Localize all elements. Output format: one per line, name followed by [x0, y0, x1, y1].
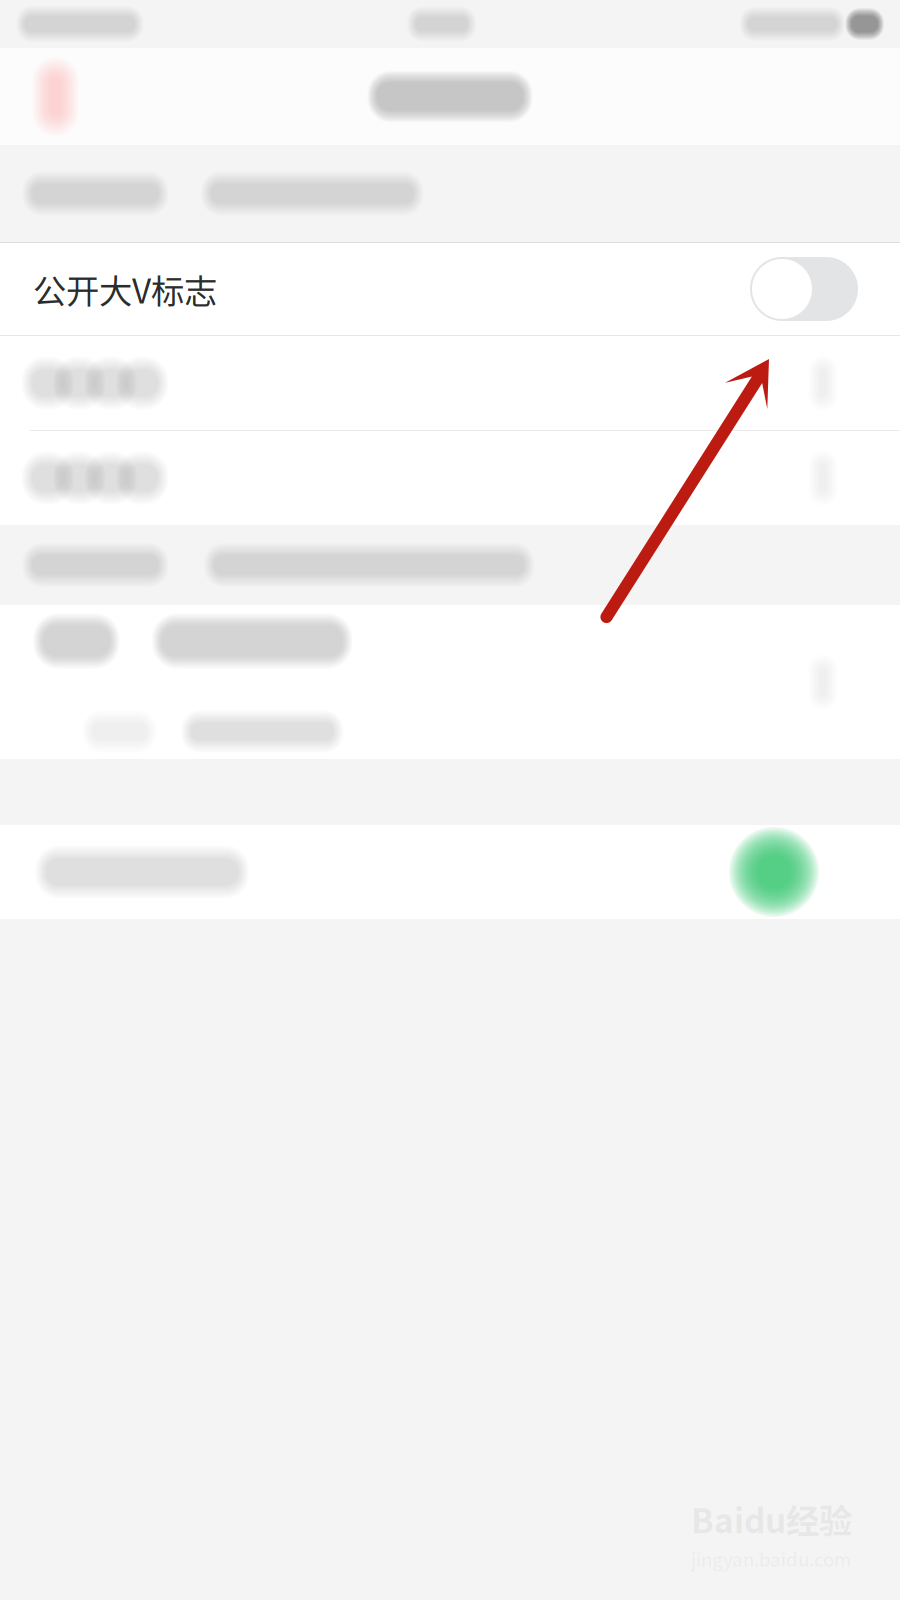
- button[interactable]: [0, 431, 900, 525]
- button[interactable]: [0, 336, 900, 430]
- button[interactable]: [0, 605, 900, 759]
- button[interactable]: 公开大V标志: [0, 243, 900, 335]
- button[interactable]: [0, 825, 900, 919]
- button[interactable]: Back: [0, 48, 79, 145]
- staticText: Baidu经验: [691, 1495, 852, 1543]
- staticText: 公开大V标志: [33, 265, 217, 313]
